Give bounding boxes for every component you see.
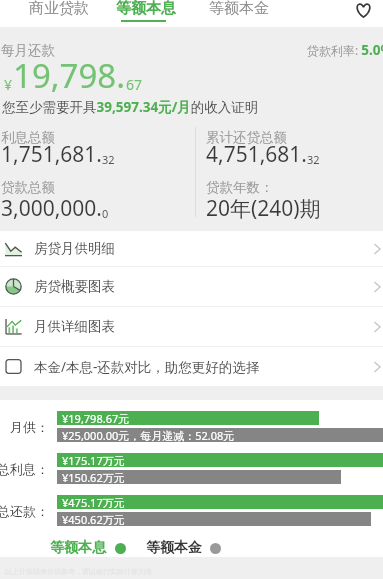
staticText: 20年(240)期 bbox=[206, 194, 321, 223]
staticText: 等额本息 bbox=[116, 0, 176, 18]
staticText: 32 bbox=[307, 152, 320, 167]
button[interactable]: 房贷月供明细 bbox=[0, 231, 383, 266]
staticText: 以上计算结果仅供参考，请以银行实际计算为准 bbox=[5, 567, 152, 576]
staticText: 房贷月供明细 bbox=[34, 240, 115, 257]
staticText: 利息总额 bbox=[1, 129, 55, 146]
staticText: 0 bbox=[102, 206, 109, 221]
staticText: ¥25,000.00元，每月递减：52.08元 bbox=[62, 428, 235, 442]
staticText: ¥19,798.67元 bbox=[62, 411, 130, 425]
staticText: 总利息： bbox=[0, 461, 49, 477]
staticText: 贷款利率: 5.0% bbox=[307, 41, 383, 59]
staticText: 贷款总额 bbox=[1, 179, 55, 196]
staticText: ¥475.17万元 bbox=[62, 495, 125, 509]
staticText: ¥450.62万元 bbox=[62, 512, 125, 526]
staticText: 月供： bbox=[10, 419, 49, 435]
button[interactable]: 等额本金 bbox=[205, 0, 273, 27]
staticText: ¥ bbox=[4, 75, 13, 94]
staticText: 累计还贷总额 bbox=[206, 129, 287, 146]
staticText: 贷款年数： bbox=[206, 179, 274, 196]
staticText: 本金/本息-还款对比，助您更好的选择 bbox=[34, 358, 260, 376]
staticText: 3,000,000. bbox=[1, 194, 102, 223]
staticText: ¥175.17万元 bbox=[62, 453, 125, 467]
staticText: ¥150.62万元 bbox=[62, 470, 125, 484]
staticText: 67 bbox=[126, 75, 143, 94]
staticText: 4,751,681. bbox=[206, 140, 307, 169]
staticText: 总还款： bbox=[0, 503, 49, 519]
button[interactable]: 本金/本息-还款对比，助您更好的选择 bbox=[0, 347, 383, 386]
staticText: 19,798. bbox=[13, 53, 126, 98]
staticText: 32 bbox=[102, 152, 115, 167]
button[interactable]: Favorite bbox=[355, 2, 372, 19]
staticText: 商业贷款 bbox=[29, 0, 89, 18]
button[interactable]: 月供详细图表 bbox=[0, 307, 383, 346]
button[interactable]: 商业贷款 bbox=[25, 0, 93, 27]
staticText: 您至少需要开具39,597.34元/月的收入证明 bbox=[2, 98, 259, 116]
staticText: 等额本息 bbox=[50, 539, 106, 557]
staticText: 房贷概要图表 bbox=[34, 278, 115, 295]
staticText: 等额本金 bbox=[209, 0, 269, 18]
button[interactable]: 等额本息 bbox=[112, 0, 180, 27]
staticText: 每月还款 bbox=[1, 42, 55, 59]
staticText: 1,751,681. bbox=[1, 140, 102, 169]
staticText: 月供详细图表 bbox=[34, 318, 115, 335]
button[interactable]: 房贷概要图表 bbox=[0, 267, 383, 306]
staticText: 等额本金 bbox=[146, 539, 202, 557]
